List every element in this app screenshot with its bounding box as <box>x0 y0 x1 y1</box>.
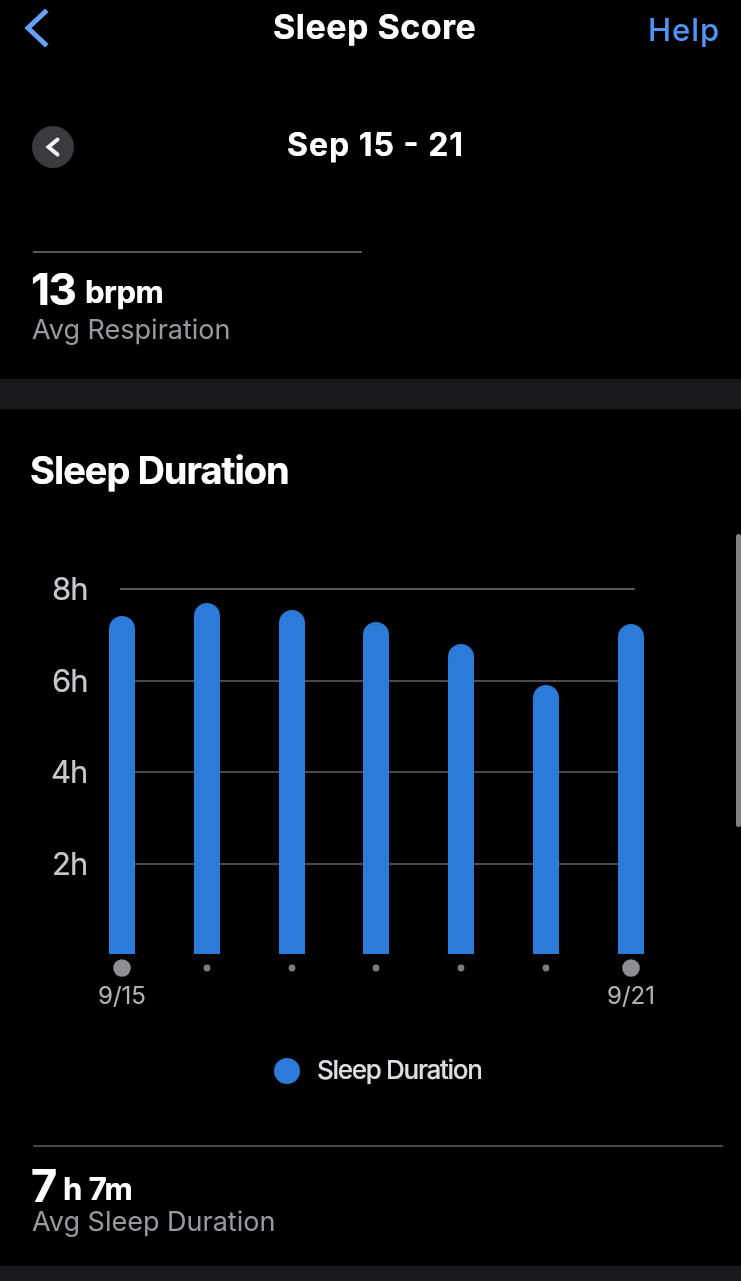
staticText: Sleep Duration <box>317 1054 482 1085</box>
staticText: 7 <box>31 1158 57 1212</box>
staticText: Sep 15 - 21 <box>287 125 465 164</box>
staticText: Sleep Score <box>273 6 477 47</box>
button[interactable]: Help <box>611 1 721 59</box>
staticText: 4h <box>51 753 88 791</box>
staticText: 6h <box>52 662 88 700</box>
button[interactable] <box>12 2 60 54</box>
staticText: Sleep Duration <box>30 447 289 493</box>
button[interactable] <box>32 126 74 168</box>
staticText: Help <box>648 11 721 49</box>
staticText: Avg Respiration <box>32 313 231 346</box>
staticText: 13 <box>31 262 76 315</box>
staticText: h 7m <box>63 1170 133 1208</box>
staticText: 9/15 <box>98 981 146 1010</box>
staticText: 9/21 <box>607 981 655 1010</box>
staticText: 2h <box>52 845 88 883</box>
staticText: 8h <box>52 570 88 608</box>
staticText: brpm <box>85 273 164 311</box>
staticText: Avg Sleep Duration <box>32 1205 276 1238</box>
